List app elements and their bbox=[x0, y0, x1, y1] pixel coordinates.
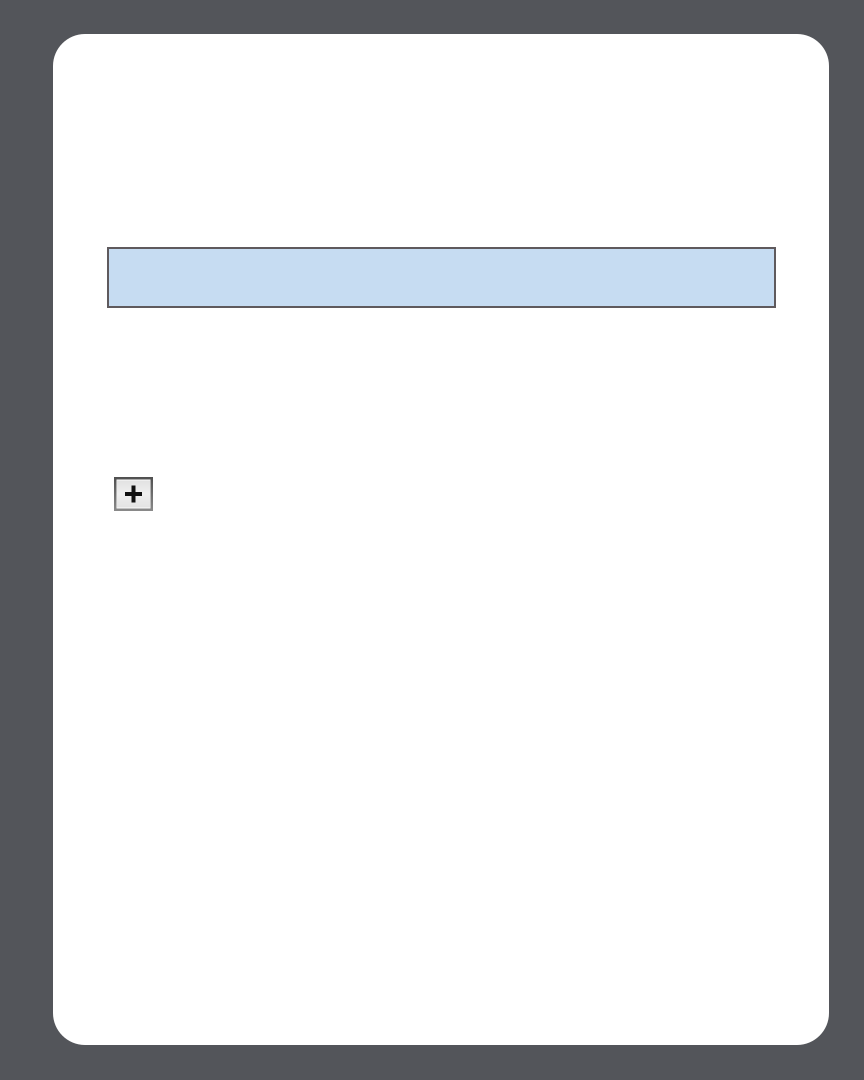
button[interactable]: Entry field bbox=[107, 247, 776, 308]
button[interactable]: Add bbox=[114, 477, 153, 511]
